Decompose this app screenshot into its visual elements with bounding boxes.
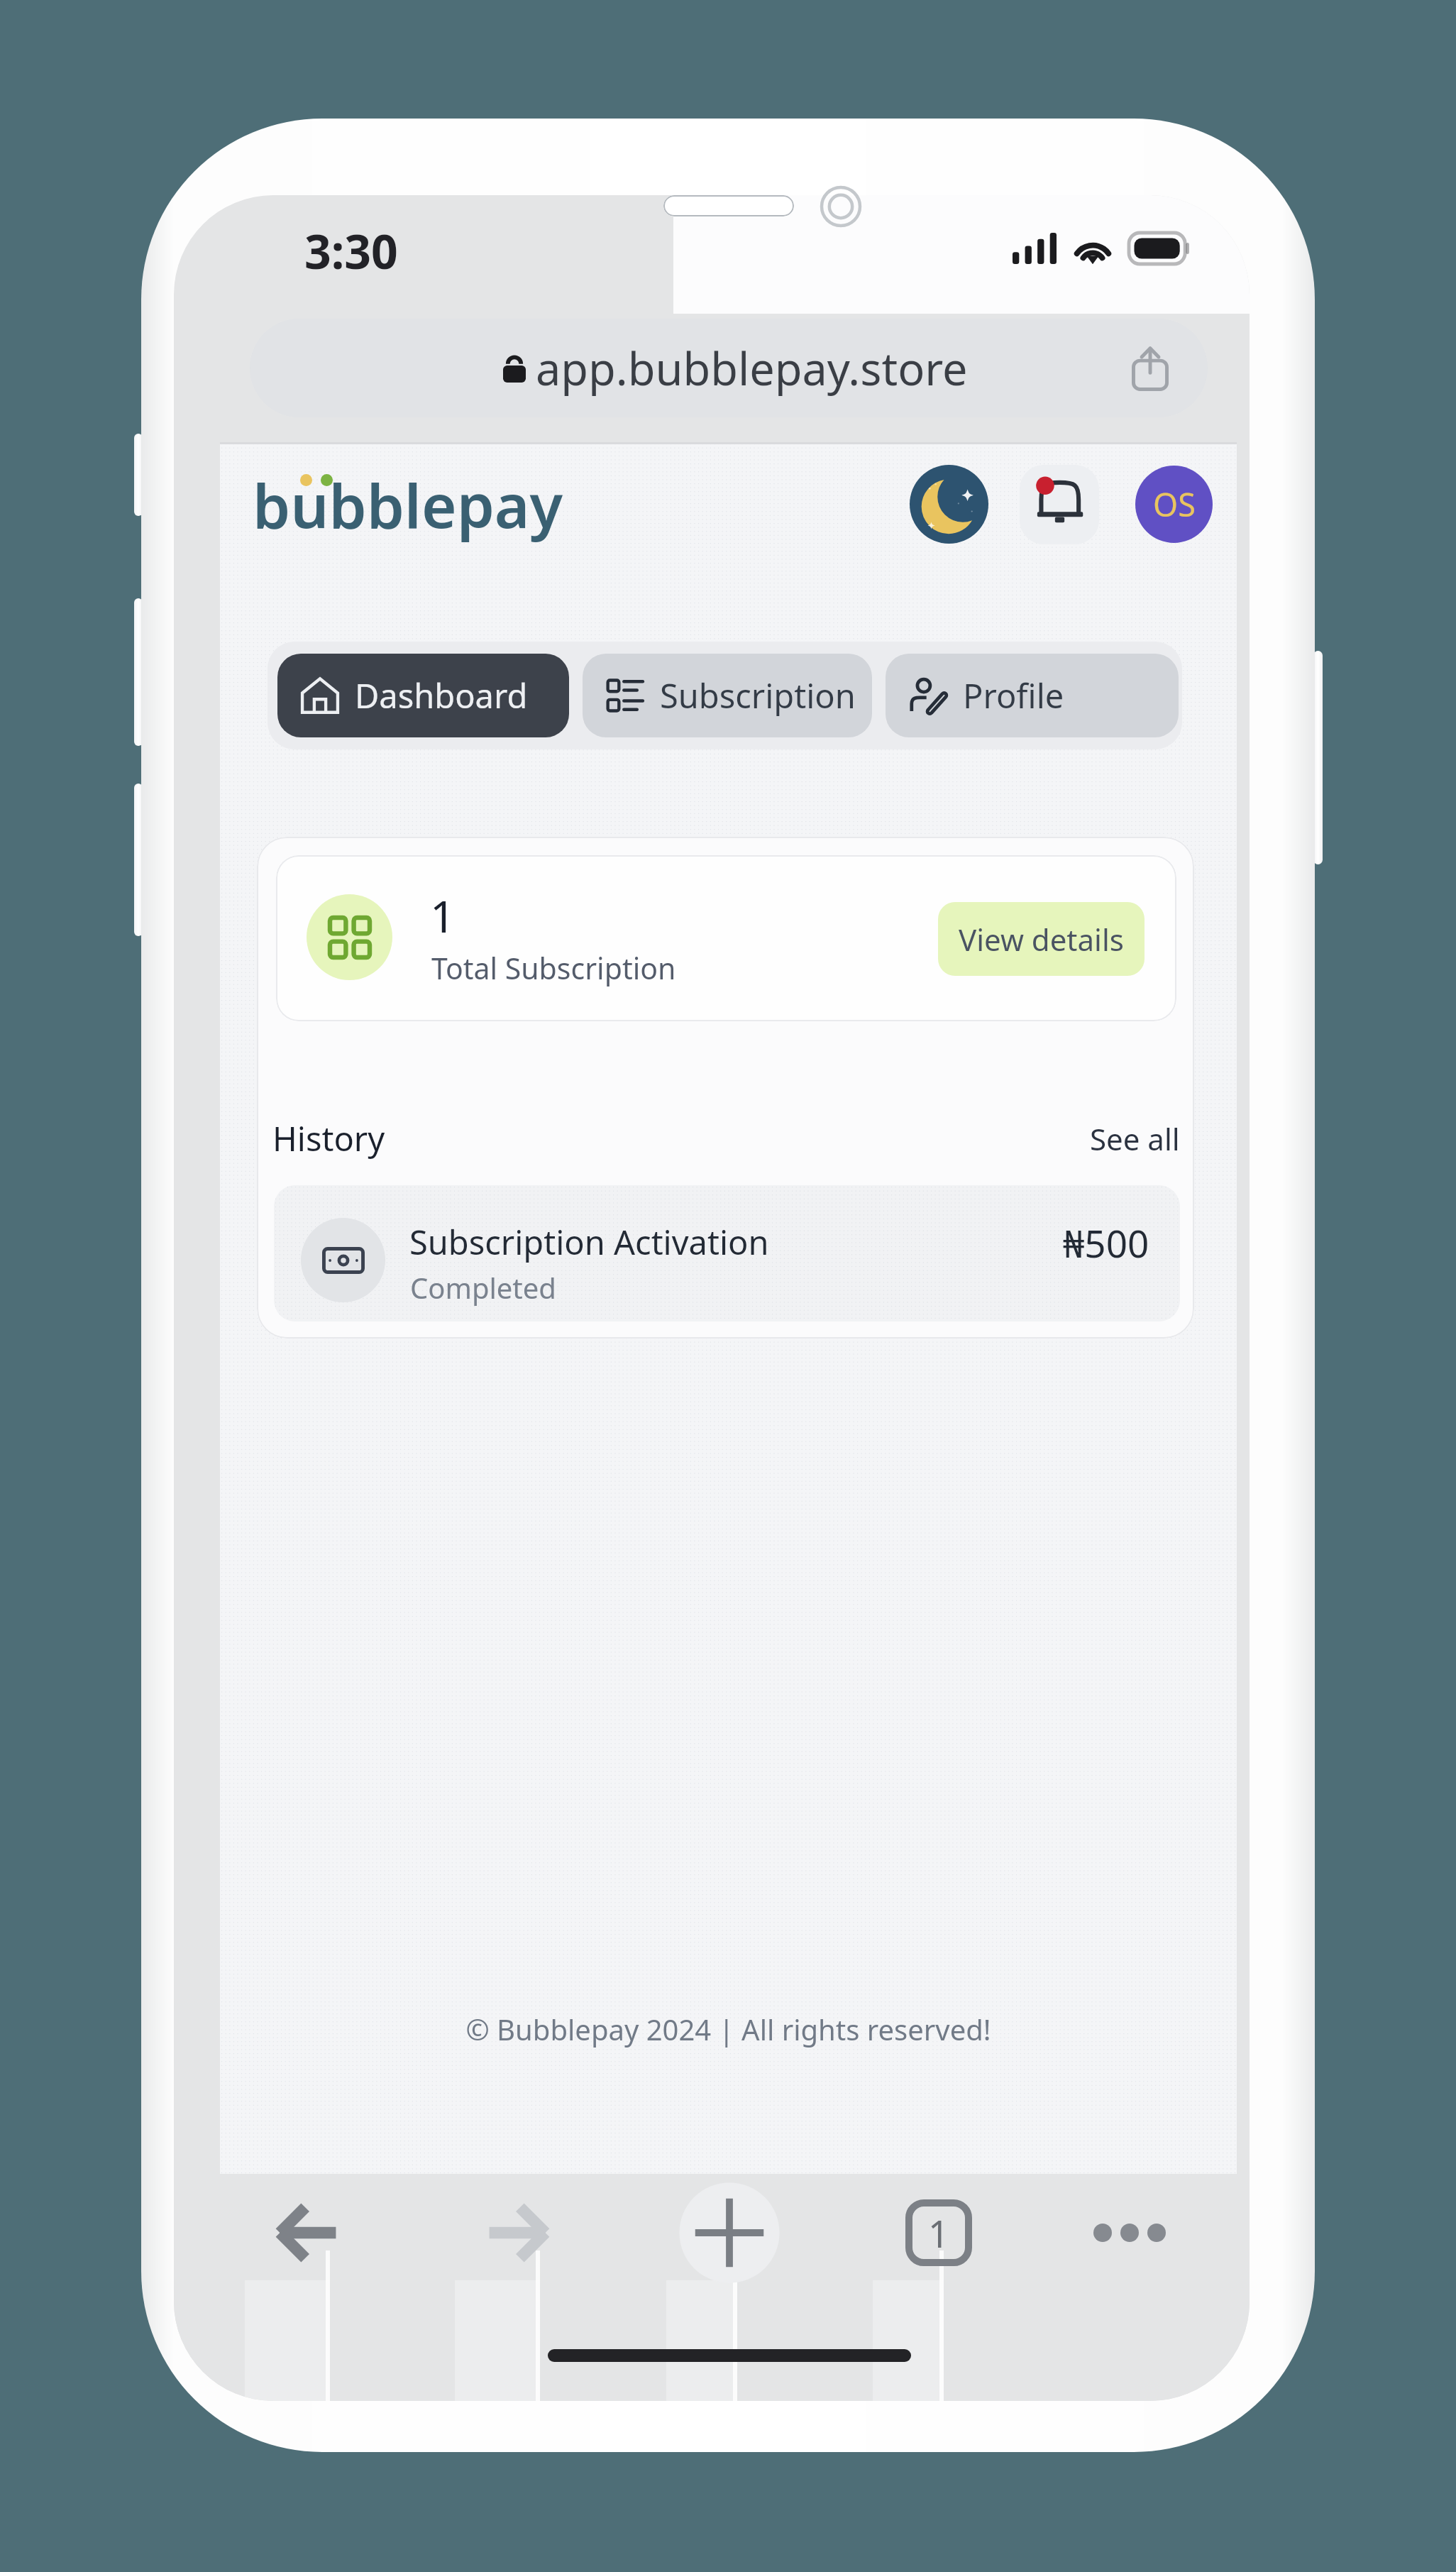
button[interactable]: 1 bbox=[276, 855, 1176, 1021]
button[interactable]: More bbox=[1073, 2176, 1186, 2290]
button[interactable]: Dashboard bbox=[277, 654, 569, 737]
button[interactable]: Profile bbox=[886, 654, 1179, 737]
button[interactable]: See all bbox=[1090, 1119, 1180, 1159]
staticText: History bbox=[272, 1116, 385, 1161]
button[interactable]: New tab bbox=[673, 2176, 786, 2290]
staticText: OS bbox=[1153, 483, 1196, 526]
staticText: Completed bbox=[410, 1268, 556, 1307]
staticText: 1 bbox=[928, 2208, 949, 2258]
button[interactable]: app.bubblepay.store bbox=[250, 319, 1208, 417]
button[interactable]: Share bbox=[1125, 344, 1175, 393]
staticText: Total Subscription bbox=[431, 948, 676, 988]
button[interactable]: Back bbox=[250, 2176, 364, 2290]
staticText: 3:30 bbox=[304, 219, 398, 282]
button[interactable]: Subscription Activation bbox=[274, 1185, 1180, 1321]
staticText: © Bubblepay 2024 | All rights reserved! bbox=[220, 2010, 1237, 2048]
button[interactable]: Notifications bbox=[1020, 465, 1099, 544]
staticText: See all bbox=[1090, 1119, 1180, 1159]
button[interactable]: View details bbox=[938, 902, 1145, 976]
button[interactable]: OS bbox=[1135, 466, 1213, 543]
staticText: app.bubblepay.store bbox=[536, 338, 968, 399]
staticText: Dashboard bbox=[355, 673, 528, 718]
staticText: bubblepay bbox=[253, 463, 563, 546]
button[interactable]: Dark mode bbox=[910, 465, 988, 544]
button[interactable]: Tabs bbox=[882, 2176, 996, 2290]
staticText: View details bbox=[959, 919, 1124, 960]
staticText: Profile bbox=[963, 673, 1064, 718]
staticText: Subscription bbox=[660, 673, 856, 718]
button[interactable]: Forward bbox=[461, 2176, 575, 2290]
button[interactable]: Subscription bbox=[583, 654, 872, 737]
staticText: Subscription Activation bbox=[409, 1219, 769, 1265]
staticText: ₦500 bbox=[1063, 1217, 1149, 1268]
staticText: 1 bbox=[430, 886, 456, 945]
